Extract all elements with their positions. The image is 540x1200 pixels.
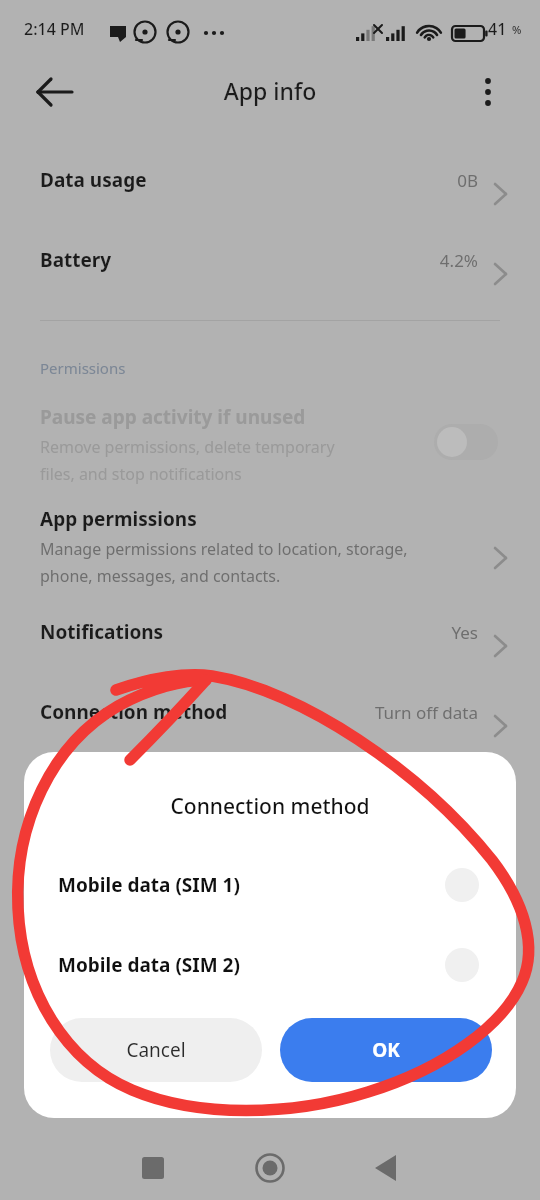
staticText: %: [512, 22, 522, 37]
staticText: Data usage: [40, 167, 147, 193]
staticText: 4.2%: [0, 249, 478, 272]
staticText: Turn off data: [0, 701, 478, 724]
button[interactable]: Battery: [0, 230, 540, 292]
staticText: OK: [280, 1037, 492, 1063]
staticText: Connection method: [24, 792, 516, 821]
staticText: 0B: [0, 169, 478, 192]
staticText: Remove permissions, delete temporary fil…: [40, 436, 335, 485]
button[interactable]: Notifications: [0, 605, 540, 663]
staticText: Connection method: [40, 699, 228, 725]
button[interactable]: Data usage: [0, 150, 540, 212]
staticText: Mobile data (SIM 1): [58, 872, 240, 898]
button[interactable]: Back: [360, 1143, 414, 1193]
staticText: Pause app activity if unused: [40, 404, 306, 430]
button[interactable]: Cancel: [50, 1018, 262, 1082]
button[interactable]: Home: [243, 1143, 297, 1193]
staticText: Cancel: [50, 1037, 262, 1063]
staticText: Yes: [0, 621, 478, 644]
staticText: Notifications: [40, 619, 164, 645]
staticText: Permissions: [40, 358, 126, 378]
staticText: Mobile data (SIM 2): [58, 952, 240, 978]
button[interactable]: OK: [280, 1018, 492, 1082]
button[interactable]: App permissions: [0, 500, 540, 598]
button[interactable]: Back: [24, 68, 86, 116]
staticText: App permissions: [40, 506, 197, 532]
button[interactable]: More options: [464, 68, 512, 116]
staticText: App info: [0, 75, 540, 106]
button[interactable]: Pause app activity if unused: [0, 398, 540, 494]
button[interactable]: Mobile data (SIM 2): [24, 932, 516, 998]
button[interactable]: Mobile data (SIM 1): [24, 852, 516, 918]
button[interactable]: Recents: [126, 1143, 180, 1193]
staticText: Battery: [40, 247, 112, 273]
staticText: Manage permissions related to location, …: [40, 538, 408, 587]
staticText: 41: [488, 18, 507, 40]
button[interactable]: Connection method: [0, 685, 540, 743]
staticText: 2:14 PM: [24, 18, 85, 40]
